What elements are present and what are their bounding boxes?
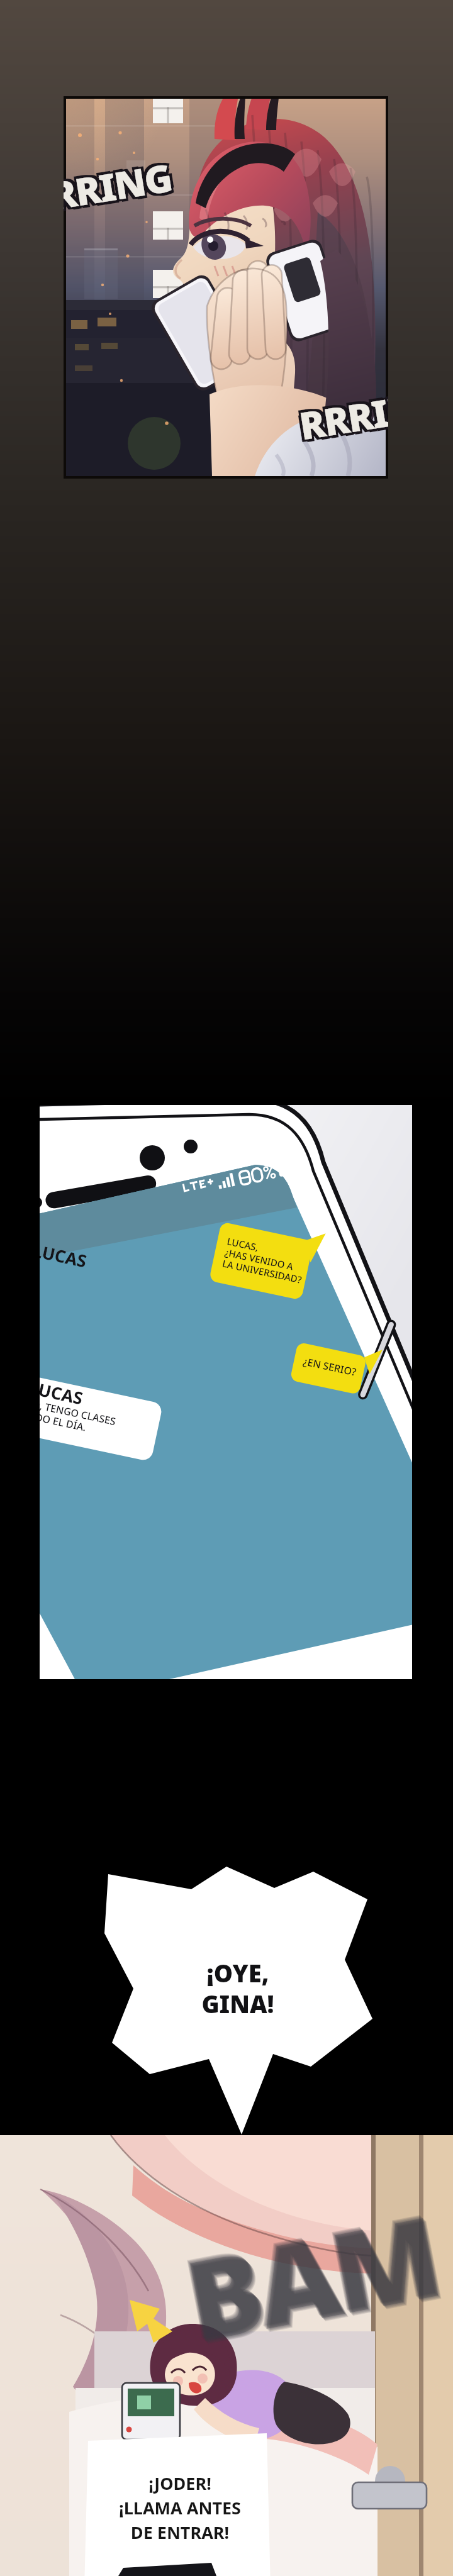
staticText: BAM xyxy=(173,2177,448,2373)
staticText: ¡JODER! ¡LLAMA ANTES DE ENTRAR! xyxy=(119,2472,241,2544)
staticText: BAM xyxy=(172,2177,448,2373)
staticText: ¿EN SERIO? xyxy=(302,1354,358,1379)
staticText: RRRING xyxy=(293,380,445,454)
staticText: BAM xyxy=(172,2176,447,2372)
staticText: BAM xyxy=(176,2180,451,2377)
staticText: BAM xyxy=(175,2179,450,2375)
staticText: BAM xyxy=(177,2182,453,2378)
staticText: BAM xyxy=(177,2181,452,2377)
button[interactable]: Webtoon episode page xyxy=(0,0,453,2576)
staticText: RRRING xyxy=(23,151,175,225)
staticText: RRRING xyxy=(26,154,177,227)
staticText: LUCAS, ¿HAS VENIDO A LA UNIVERSIDAD? xyxy=(221,1235,308,1286)
staticText: ¡OYE, GINA! xyxy=(201,1957,274,2021)
staticText: BAM xyxy=(174,2179,449,2375)
staticText: BAM xyxy=(171,2175,446,2371)
staticText: RRRING xyxy=(293,375,445,449)
staticText: BAM xyxy=(174,2178,449,2374)
staticText: RRRING xyxy=(21,154,172,227)
staticText: BAM xyxy=(175,2180,451,2376)
staticText: RRRING xyxy=(296,378,447,451)
staticText: LUCAS xyxy=(31,1239,89,1273)
staticText: RRRING xyxy=(21,149,172,222)
staticText: NO, TENGO CLASES TODO EL DÍA. xyxy=(21,1396,117,1440)
staticText: RRRING xyxy=(298,375,450,449)
staticText: LUCAS xyxy=(27,1376,86,1410)
staticText: RRRING xyxy=(298,380,450,454)
staticText: RRRING xyxy=(26,149,177,222)
